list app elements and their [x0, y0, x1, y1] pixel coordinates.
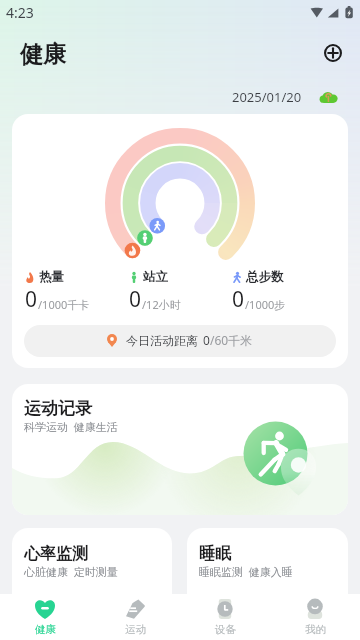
staticText: 总步数 — [246, 269, 284, 285]
button[interactable]: 运动 — [90, 594, 180, 640]
staticText: 心脏健康 定时测量 — [24, 564, 118, 579]
staticText: 健康 — [35, 623, 56, 636]
button[interactable]: 热量 — [12, 114, 348, 368]
staticText: 2025/01/20 — [232, 88, 302, 106]
staticText: 睡眠监测 健康入睡 — [199, 564, 293, 579]
staticText: /12小时 — [142, 297, 181, 312]
button[interactable]: 今日活动距离 — [24, 325, 336, 357]
staticText: 0 — [25, 285, 38, 314]
staticText: /1000步 — [245, 297, 286, 312]
staticText: 睡眠 — [199, 544, 231, 564]
staticText: 运动记录 — [24, 398, 92, 419]
staticText: 0 — [232, 285, 245, 314]
staticText: 今日活动距离 — [126, 333, 198, 348]
staticText: 0 — [129, 285, 142, 314]
staticText: /60千米 — [210, 332, 253, 348]
staticText: 4:23 — [6, 3, 34, 22]
staticText: 科学运动 健康生活 — [24, 419, 118, 434]
button[interactable]: 设备 — [180, 594, 270, 640]
staticText: 心率监测 — [24, 544, 88, 564]
staticText: 0 — [203, 332, 210, 348]
staticText: 热量 — [39, 269, 64, 285]
button[interactable]: 心率监测 — [12, 528, 172, 618]
staticText: 站立 — [143, 269, 168, 285]
staticText: 我的 — [305, 623, 326, 636]
button[interactable]: Add — [318, 38, 348, 68]
button[interactable]: 运动记录 — [12, 384, 348, 515]
staticText: 健康 — [20, 40, 66, 69]
staticText: 设备 — [215, 623, 236, 636]
button[interactable]: 我的 — [270, 594, 360, 640]
button[interactable]: 健康 — [0, 594, 90, 640]
button[interactable]: 睡眠 — [187, 528, 348, 618]
staticText: 运动 — [125, 623, 146, 636]
staticText: /1000千卡 — [38, 297, 90, 312]
